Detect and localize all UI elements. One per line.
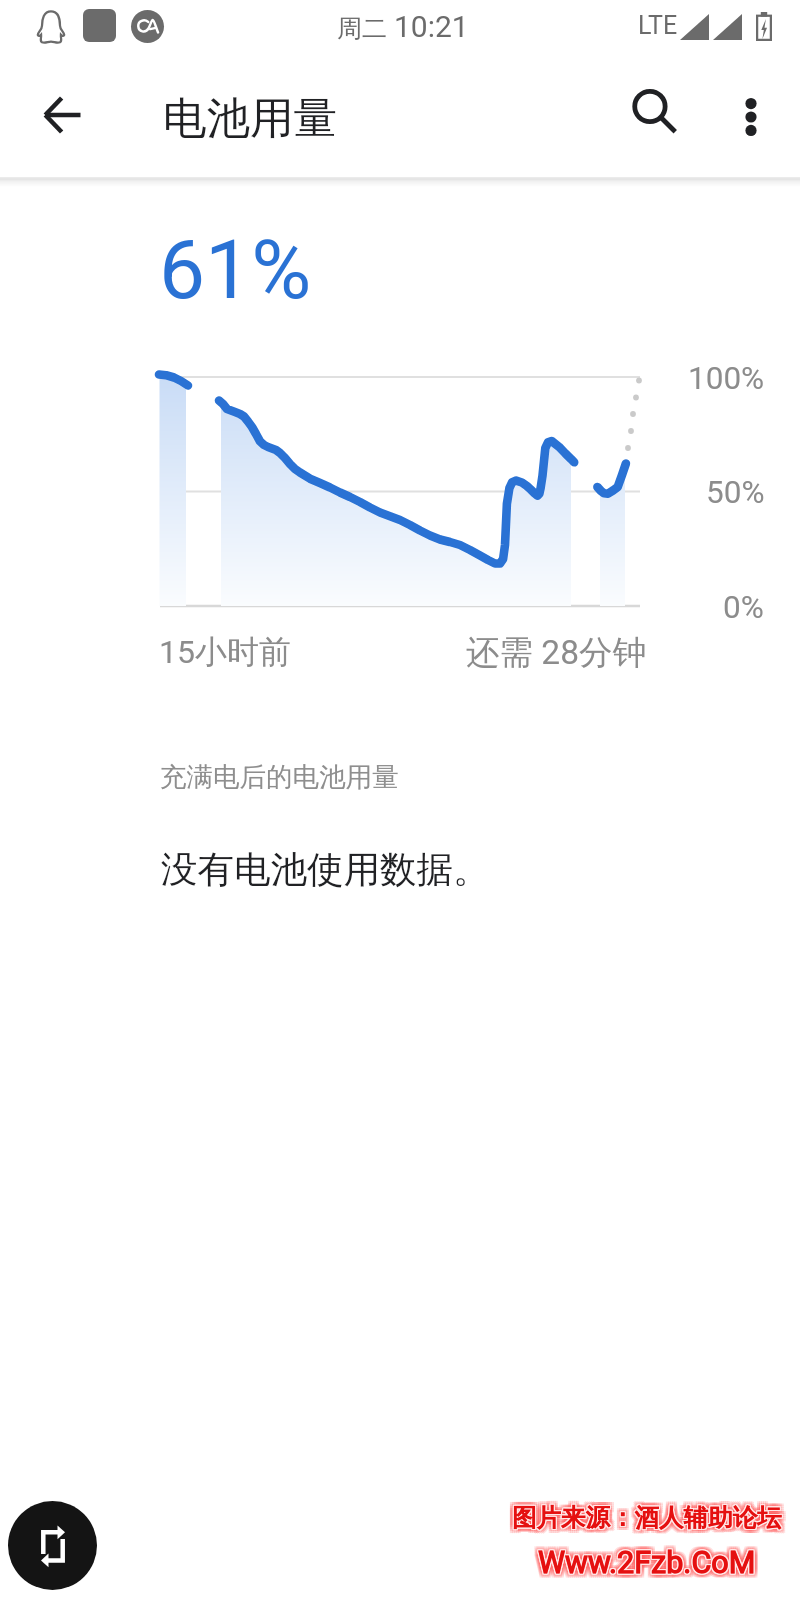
button[interactable]: Back xyxy=(24,77,100,153)
button[interactable]: Rotate screen xyxy=(8,1501,97,1590)
staticText: Www.2Fzb.CoM xyxy=(538,1541,756,1577)
staticText: 图片来源：酒人辅助论坛 xyxy=(513,1501,783,1532)
staticText: Www.2Fzb.CoM xyxy=(540,1541,758,1577)
staticText: Www.2Fzb.CoM xyxy=(538,1544,756,1580)
staticText: 图片来源：酒人辅助论坛 xyxy=(510,1506,780,1537)
staticText: 图片来源：酒人辅助论坛 xyxy=(516,1502,786,1533)
staticText: Www.2Fzb.CoM xyxy=(537,1546,755,1582)
staticText: 图片来源：酒人辅助论坛 xyxy=(508,1506,778,1537)
staticText: Www.2Fzb.CoM xyxy=(538,1547,756,1583)
staticText: 图片来源：酒人辅助论坛 xyxy=(513,1502,783,1533)
staticText: Www.2Fzb.CoM xyxy=(538,1543,756,1579)
staticText: 图片来源：酒人辅助论坛 xyxy=(512,1500,782,1531)
staticText: 图片来源：酒人辅助论坛 xyxy=(512,1506,782,1537)
staticText: 图片来源：酒人辅助论坛 xyxy=(508,1504,778,1535)
staticText: 图片来源：酒人辅助论坛 xyxy=(511,1503,781,1534)
staticText: 图片来源：酒人辅助论坛 xyxy=(510,1498,780,1529)
staticText: 100% xyxy=(688,360,765,397)
staticText: Www.2Fzb.CoM xyxy=(537,1545,755,1581)
staticText: 图片来源：酒人辅助论坛 xyxy=(513,1503,783,1534)
staticText: 图片来源：酒人辅助论坛 xyxy=(512,1502,782,1533)
staticText: 图片来源：酒人辅助论坛 xyxy=(516,1500,786,1531)
staticText: 图片来源：酒人辅助论坛 xyxy=(512,1503,782,1534)
staticText: 图片来源：酒人辅助论坛 xyxy=(514,1502,784,1533)
staticText: 50% xyxy=(706,474,765,511)
staticText: Www.2Fzb.CoM xyxy=(534,1545,752,1581)
staticText: 15小时前 xyxy=(159,632,291,672)
staticText: 图片来源：酒人辅助论坛 xyxy=(508,1498,778,1529)
staticText: 图片来源：酒人辅助论坛 xyxy=(510,1504,780,1535)
staticText: Www.2Fzb.CoM xyxy=(534,1543,752,1579)
staticText: Www.2Fzb.CoM xyxy=(534,1547,752,1583)
staticText: Www.2Fzb.CoM xyxy=(537,1544,755,1580)
staticText: 图片来源：酒人辅助论坛 xyxy=(514,1504,784,1535)
staticText: 周二 xyxy=(337,13,394,44)
staticText: Www.2Fzb.CoM xyxy=(540,1549,758,1585)
staticText: 图片来源：酒人辅助论坛 xyxy=(512,1498,782,1529)
staticText: 0% xyxy=(723,589,764,626)
button[interactable]: More options xyxy=(713,79,789,155)
staticText: Www.2Fzb.CoM xyxy=(538,1549,756,1585)
staticText: Www.2Fzb.CoM xyxy=(536,1545,754,1581)
staticText: 图片来源：酒人辅助论坛 xyxy=(510,1502,780,1533)
staticText: 图片来源：酒人辅助论坛 xyxy=(516,1498,786,1529)
staticText: 图片来源：酒人辅助论坛 xyxy=(514,1498,784,1529)
staticText: LTE xyxy=(638,11,678,40)
staticText: Www.2Fzb.CoM xyxy=(536,1549,754,1585)
staticText: 图片来源：酒人辅助论坛 xyxy=(508,1502,778,1533)
staticText: Www.2Fzb.CoM xyxy=(538,1546,756,1582)
staticText: Www.2Fzb.CoM xyxy=(536,1547,754,1583)
staticText: Www.2Fzb.CoM xyxy=(542,1547,760,1583)
staticText: 10:21 xyxy=(394,9,469,44)
staticText: Www.2Fzb.CoM xyxy=(539,1546,757,1582)
staticText: Www.2Fzb.CoM xyxy=(542,1541,760,1577)
staticText: Www.2Fzb.CoM xyxy=(539,1545,757,1581)
staticText: Www.2Fzb.CoM xyxy=(542,1549,760,1585)
staticText: Www.2Fzb.CoM xyxy=(534,1541,752,1577)
button[interactable]: Search xyxy=(617,76,693,152)
staticText: Www.2Fzb.CoM xyxy=(538,1545,756,1581)
staticText: 图片来源：酒人辅助论坛 xyxy=(511,1501,781,1532)
staticText: Www.2Fzb.CoM xyxy=(534,1549,752,1585)
staticText: 图片来源：酒人辅助论坛 xyxy=(510,1500,780,1531)
staticText: Www.2Fzb.CoM xyxy=(542,1543,760,1579)
staticText: Www.2Fzb.CoM xyxy=(538,1545,756,1581)
staticText: Www.2Fzb.CoM xyxy=(540,1547,758,1583)
staticText: Www.2Fzb.CoM xyxy=(539,1544,757,1580)
staticText: 图片来源：酒人辅助论坛 xyxy=(512,1501,782,1532)
staticText: Www.2Fzb.CoM xyxy=(542,1545,760,1581)
staticText: 还需 28分钟 xyxy=(466,632,646,674)
staticText: 图片来源：酒人辅助论坛 xyxy=(516,1504,786,1535)
staticText: Www.2Fzb.CoM xyxy=(536,1543,754,1579)
staticText: Www.2Fzb.CoM xyxy=(540,1545,758,1581)
staticText: 充满电后的电池用量 xyxy=(160,760,399,793)
staticText: 图片来源：酒人辅助论坛 xyxy=(516,1506,786,1537)
staticText: 图片来源：酒人辅助论坛 xyxy=(512,1502,782,1533)
staticText: 图片来源：酒人辅助论坛 xyxy=(508,1500,778,1531)
staticText: Www.2Fzb.CoM xyxy=(536,1541,754,1577)
staticText: 61% xyxy=(159,222,312,318)
staticText: 电池用量 xyxy=(163,91,337,146)
staticText: 图片来源：酒人辅助论坛 xyxy=(514,1500,784,1531)
staticText: Www.2Fzb.CoM xyxy=(540,1543,758,1579)
staticText: 图片来源：酒人辅助论坛 xyxy=(512,1504,782,1535)
staticText: 图片来源：酒人辅助论坛 xyxy=(511,1502,781,1533)
staticText: 图片来源：酒人辅助论坛 xyxy=(514,1506,784,1537)
staticText: 没有电池使用数据。 xyxy=(161,847,490,893)
